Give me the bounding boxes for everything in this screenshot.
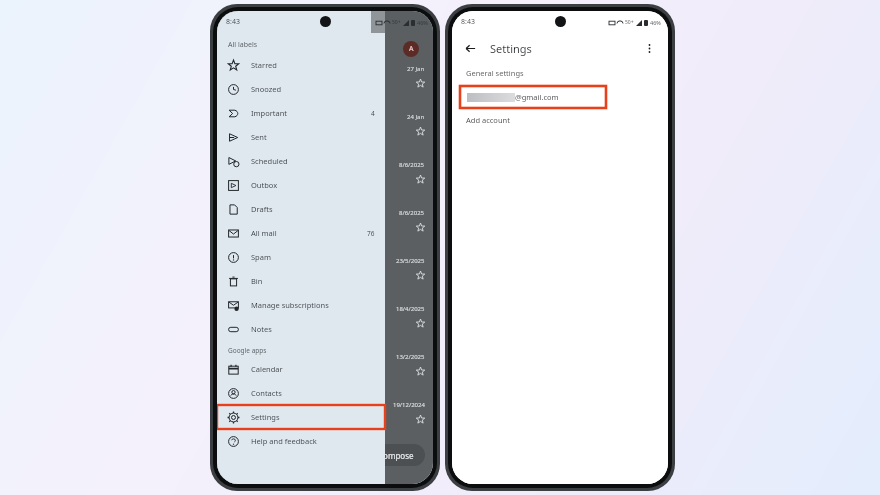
staticText: @gmail.com xyxy=(515,92,559,102)
staticText: Manage subscriptions xyxy=(251,300,375,310)
staticText: Drafts xyxy=(251,204,375,214)
staticText: Settings xyxy=(251,412,375,422)
button[interactable]: Help and feedback xyxy=(217,429,385,453)
staticText: All mail xyxy=(251,228,367,238)
button[interactable]: All mail xyxy=(217,221,385,245)
staticText: Sent xyxy=(251,132,375,142)
button[interactable]: Spam xyxy=(217,245,385,269)
staticText: Settings xyxy=(490,41,532,56)
staticText: 18/4/2025 xyxy=(396,305,425,313)
staticText: anges t… xyxy=(225,367,416,376)
button[interactable]: Sent xyxy=(217,125,385,149)
staticText: Notes xyxy=(251,324,375,334)
button[interactable]: Back xyxy=(462,40,479,57)
staticText: Google apps xyxy=(228,346,267,355)
button[interactable]: Outbox xyxy=(217,173,385,197)
staticText xyxy=(225,415,416,424)
staticText: 8/6/2025 xyxy=(399,209,425,217)
button[interactable]: Compose xyxy=(367,444,425,466)
staticText: Spam xyxy=(251,252,375,262)
button[interactable]: Settings xyxy=(217,405,385,429)
staticText: 19/12/2024 xyxy=(393,401,425,409)
staticText: reminde… xyxy=(225,271,416,280)
staticText: 23/5/2025 xyxy=(396,257,425,265)
button[interactable]: Contacts xyxy=(217,381,385,405)
staticText: Important xyxy=(251,108,371,118)
staticText: Scheduled xyxy=(251,156,375,166)
button[interactable]: @gmail.com xyxy=(460,86,606,108)
staticText: 27 Jan xyxy=(407,65,425,73)
staticText: ner Sta… xyxy=(225,127,416,136)
staticText: 24 Jan xyxy=(407,113,425,121)
button[interactable]: Bin xyxy=(217,269,385,293)
staticText: 8:43 xyxy=(461,17,475,27)
staticText: A xyxy=(409,44,414,54)
button[interactable]: Snoozed xyxy=(217,77,385,101)
button[interactable]: Starred xyxy=(217,53,385,77)
staticText: All labels xyxy=(228,40,258,50)
staticText: Outbox xyxy=(251,180,375,190)
button[interactable]: Calendar xyxy=(217,357,385,381)
staticText xyxy=(225,319,416,328)
staticText: 76 xyxy=(367,229,375,238)
button[interactable]: Manage subscriptions xyxy=(217,293,385,317)
staticText: Add account xyxy=(466,115,510,125)
staticText: 50+ xyxy=(625,19,634,26)
button[interactable]: Important xyxy=(217,101,385,125)
staticText: Snoozed xyxy=(251,84,375,94)
staticText: you on… xyxy=(225,175,416,184)
staticText: 8/6/2025 xyxy=(399,161,425,169)
staticText: Calendar xyxy=(251,364,375,374)
staticText: General settings xyxy=(466,68,524,78)
button[interactable]: Scheduled xyxy=(217,149,385,173)
staticText: Compose xyxy=(378,450,414,461)
button[interactable]: Drafts xyxy=(217,197,385,221)
staticText: you on… xyxy=(225,223,416,232)
staticText: t mana… xyxy=(225,79,416,88)
button[interactable]: Notes xyxy=(217,317,385,341)
staticText: Bin xyxy=(251,276,375,286)
staticText: 50+ xyxy=(392,19,401,26)
staticText: 46% xyxy=(417,19,428,26)
staticText: Contacts xyxy=(251,388,375,398)
staticText: 4 xyxy=(371,109,375,118)
staticText: 8:43 xyxy=(226,17,240,27)
staticText: Help and feedback xyxy=(251,436,375,446)
button[interactable]: Add account xyxy=(452,108,668,132)
staticText: Starred xyxy=(251,60,375,70)
staticText: 13/2/2025 xyxy=(396,353,425,361)
button[interactable]: More options xyxy=(641,40,658,57)
staticText: 46% xyxy=(650,19,661,26)
